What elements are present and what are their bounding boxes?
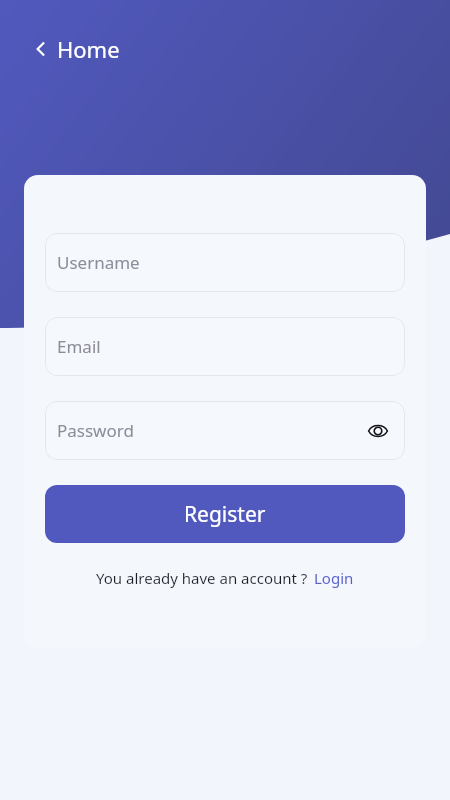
button[interactable]: Password	[45, 401, 405, 460]
staticText: Email	[57, 335, 101, 358]
button[interactable]: Username	[45, 233, 405, 292]
staticText: You already have an account ?	[96, 568, 308, 588]
staticText: Username	[57, 251, 140, 274]
button[interactable]: Register	[45, 485, 405, 543]
staticText: Login	[314, 568, 354, 588]
staticText: Home	[57, 34, 120, 64]
button[interactable]: Show password	[361, 414, 395, 448]
staticText: Password	[57, 419, 134, 442]
staticText: Register	[184, 500, 266, 529]
button[interactable]: Login	[314, 568, 354, 588]
button[interactable]: Email	[45, 317, 405, 376]
button[interactable]: Back to Home	[28, 30, 126, 68]
